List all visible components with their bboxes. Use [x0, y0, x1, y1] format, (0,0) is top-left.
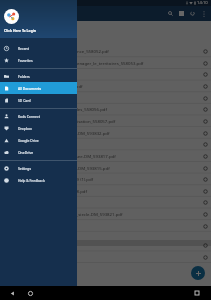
button[interactable]: Back — [8, 289, 16, 297]
staticText: guide_mobilit_ADVanced-DM_593819 (1).pdf — [4, 176, 200, 182]
staticText: Dropbox — [18, 126, 32, 131]
staticText: rapport_annuel_593822.pdf — [4, 242, 200, 248]
button[interactable]: les_nouvelles_mesures_par_mondialisation… — [0, 115, 211, 127]
button[interactable]: le_rapport_de_la_Republique_repensee-DM_… — [0, 150, 211, 162]
staticText: convention_des_droits_transnationales_55… — [4, 106, 200, 112]
button[interactable]: Google Drive — [0, 134, 77, 146]
staticText: 14:10 — [197, 0, 208, 6]
button[interactable]: mobilit_ADVanced-DM_593819.pdf — [0, 196, 211, 208]
staticText: Kods Connect — [18, 114, 40, 119]
button[interactable]: Home — [26, 289, 34, 297]
button[interactable]: les_personnes_lumieres_revolutions-DM_59… — [0, 162, 211, 174]
staticText: organisation_du_gouvernement_amenager_le… — [4, 60, 200, 66]
button[interactable]: Settings — [0, 162, 77, 174]
button[interactable]: synthese_annexe_b.pdf — [0, 92, 211, 104]
button[interactable]: le_developpeur_des_queries_totales-DM_59… — [0, 127, 211, 139]
staticText: le_rapport_de_la_Republique_repensee-DM_… — [4, 153, 200, 159]
button[interactable]: SD Card — [0, 94, 77, 106]
button[interactable]: Refresh — [187, 8, 198, 19]
button[interactable]: Help & Feedback — [0, 174, 77, 186]
staticText: le_developpeur_des_queries_totales-DM_59… — [4, 130, 200, 136]
staticText: les_nouvelles_mesures_par_mondialisation… — [4, 118, 200, 124]
staticText: declaration_THEL_593815.pdf — [4, 141, 200, 147]
button[interactable]: Recent — [0, 42, 77, 54]
staticText: Settings — [18, 166, 32, 171]
button[interactable]: Dropbox — [0, 122, 77, 134]
button[interactable]: Search — [165, 8, 176, 19]
button[interactable]: convention_des_droits_transnationales_55… — [0, 103, 211, 115]
button[interactable]: Add — [191, 266, 205, 280]
button[interactable]: documents_divers_593829.pdf — [0, 251, 211, 263]
button[interactable]: la_politique_dans_la_France_du_XXe_siecl… — [0, 208, 211, 220]
button[interactable]: Recents — [193, 289, 201, 297]
button[interactable]: Folders — [0, 70, 77, 82]
staticText: k.pdf — [4, 223, 200, 229]
button[interactable]: declaration_THEL_593815.pdf — [0, 138, 211, 150]
staticText: synthese_annexe_b.pdf — [4, 95, 200, 101]
button[interactable]: All Documents — [0, 82, 77, 94]
staticText: mobilit_ADVanced-DM_593819.pdf — [4, 199, 200, 205]
staticText: documents_divers_593829.pdf — [4, 254, 200, 260]
button[interactable]: OneDrive — [0, 146, 77, 158]
button[interactable]: Click Here To Login — [0, 0, 77, 38]
staticText: All Documents — [18, 86, 42, 91]
button[interactable]: More options — [198, 8, 209, 19]
button[interactable]: Favorites — [0, 54, 77, 66]
staticText: Recent — [18, 46, 29, 51]
staticText: Favorites — [18, 58, 33, 63]
staticText: Folders — [18, 74, 30, 79]
button[interactable]: guide_mobilit_ADVanced-DM_593818.pdf — [0, 185, 211, 197]
button[interactable]: guide_pratique_du_monde_558055.pdf — [0, 80, 211, 92]
button[interactable]: k.pdf — [0, 220, 211, 232]
button[interactable]: rapport_annuel_593822.pdf — [0, 239, 211, 251]
button[interactable]: rapport_558054.pdf — [0, 68, 211, 80]
staticText: guide_mobilit_ADVanced-DM_593818.pdf — [4, 188, 200, 194]
staticText: Help & Feedback — [18, 178, 45, 183]
staticText: liste_des_institutions_regionales_France… — [4, 48, 200, 54]
button[interactable]: organisation_du_gouvernement_amenager_le… — [0, 57, 211, 69]
staticText: rapport_558054.pdf — [4, 71, 200, 77]
staticText: la_politique_dans_la_France_du_XXe_siecl… — [4, 211, 200, 217]
button[interactable]: guide_mobilit_ADVanced-DM_593819 (1).pdf — [0, 173, 211, 185]
button[interactable]: liste_des_institutions_regionales_France… — [0, 45, 211, 57]
staticText: Click Here To Login — [4, 28, 36, 33]
button[interactable]: Kods Connect — [0, 110, 77, 122]
staticText: les_personnes_lumieres_revolutions-DM_59… — [4, 165, 200, 171]
staticText: OneDrive — [18, 150, 34, 155]
staticText: guide_pratique_du_monde_558055.pdf — [4, 83, 200, 89]
staticText: SD Card — [18, 98, 31, 103]
staticText: Google Drive — [18, 138, 39, 143]
button[interactable]: Grid view — [176, 8, 187, 19]
